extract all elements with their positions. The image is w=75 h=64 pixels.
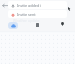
staticText: Weather update xyxy=(13,18,40,23)
button[interactable]: Cloud xyxy=(8,22,18,29)
button[interactable]: Back xyxy=(1,1,9,9)
button[interactable]: Invite sent xyxy=(8,10,67,18)
staticText: Invite added i xyxy=(17,3,42,8)
button[interactable]: Invite added i xyxy=(8,1,67,9)
staticText: Invite sent xyxy=(17,12,36,17)
